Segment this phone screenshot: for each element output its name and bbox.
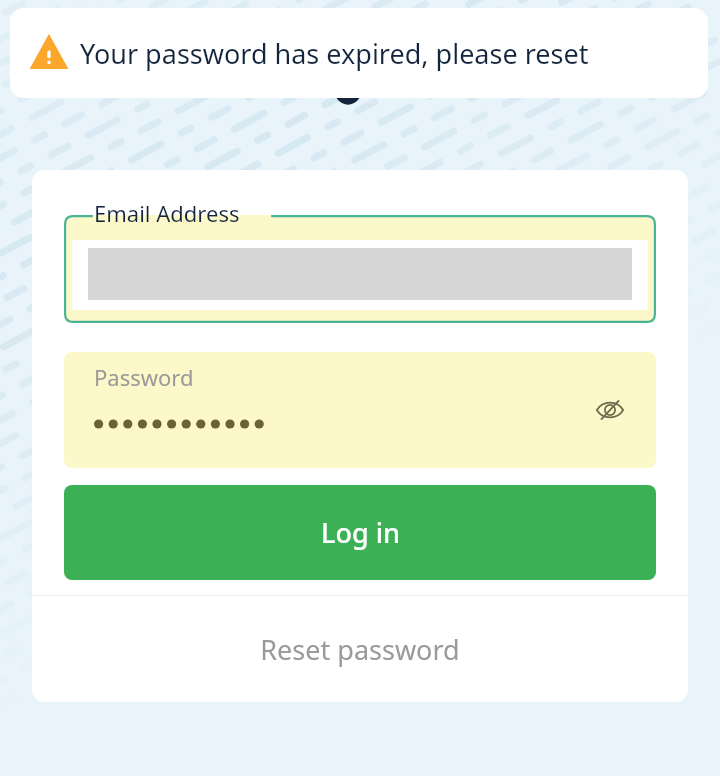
button[interactable] <box>64 215 656 323</box>
button[interactable]: Your password has expired, please reset <box>10 8 708 98</box>
staticText: Log in <box>321 514 400 551</box>
button[interactable]: Reset password <box>32 596 688 702</box>
staticText: Password <box>94 362 194 392</box>
button[interactable]: Show password <box>586 386 634 434</box>
staticText: Email Address <box>94 198 240 228</box>
button[interactable]: Log in <box>64 485 656 580</box>
staticText: Your password has expired, please reset <box>80 35 589 72</box>
button[interactable]: Password <box>64 352 656 468</box>
staticText: Reset password <box>260 631 460 668</box>
